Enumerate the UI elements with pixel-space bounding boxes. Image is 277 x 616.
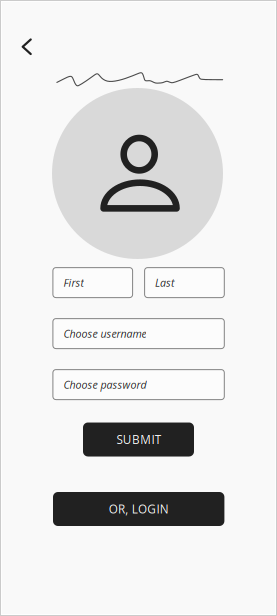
button[interactable]: First (53, 268, 133, 298)
button[interactable]: Choose username (53, 319, 224, 349)
staticText: First (63, 275, 84, 290)
button[interactable]: Back (14, 30, 40, 63)
button[interactable]: SUBMIT (83, 422, 194, 456)
button[interactable]: OR, LOGIN (53, 492, 224, 526)
staticText: Last (155, 275, 175, 290)
button[interactable]: Last (145, 268, 224, 298)
staticText: SUBMIT (116, 431, 161, 447)
button[interactable]: Choose password (53, 370, 224, 400)
staticText: Choose username (63, 326, 146, 341)
staticText: OR, LOGIN (109, 501, 169, 517)
staticText: Choose password (63, 377, 146, 392)
